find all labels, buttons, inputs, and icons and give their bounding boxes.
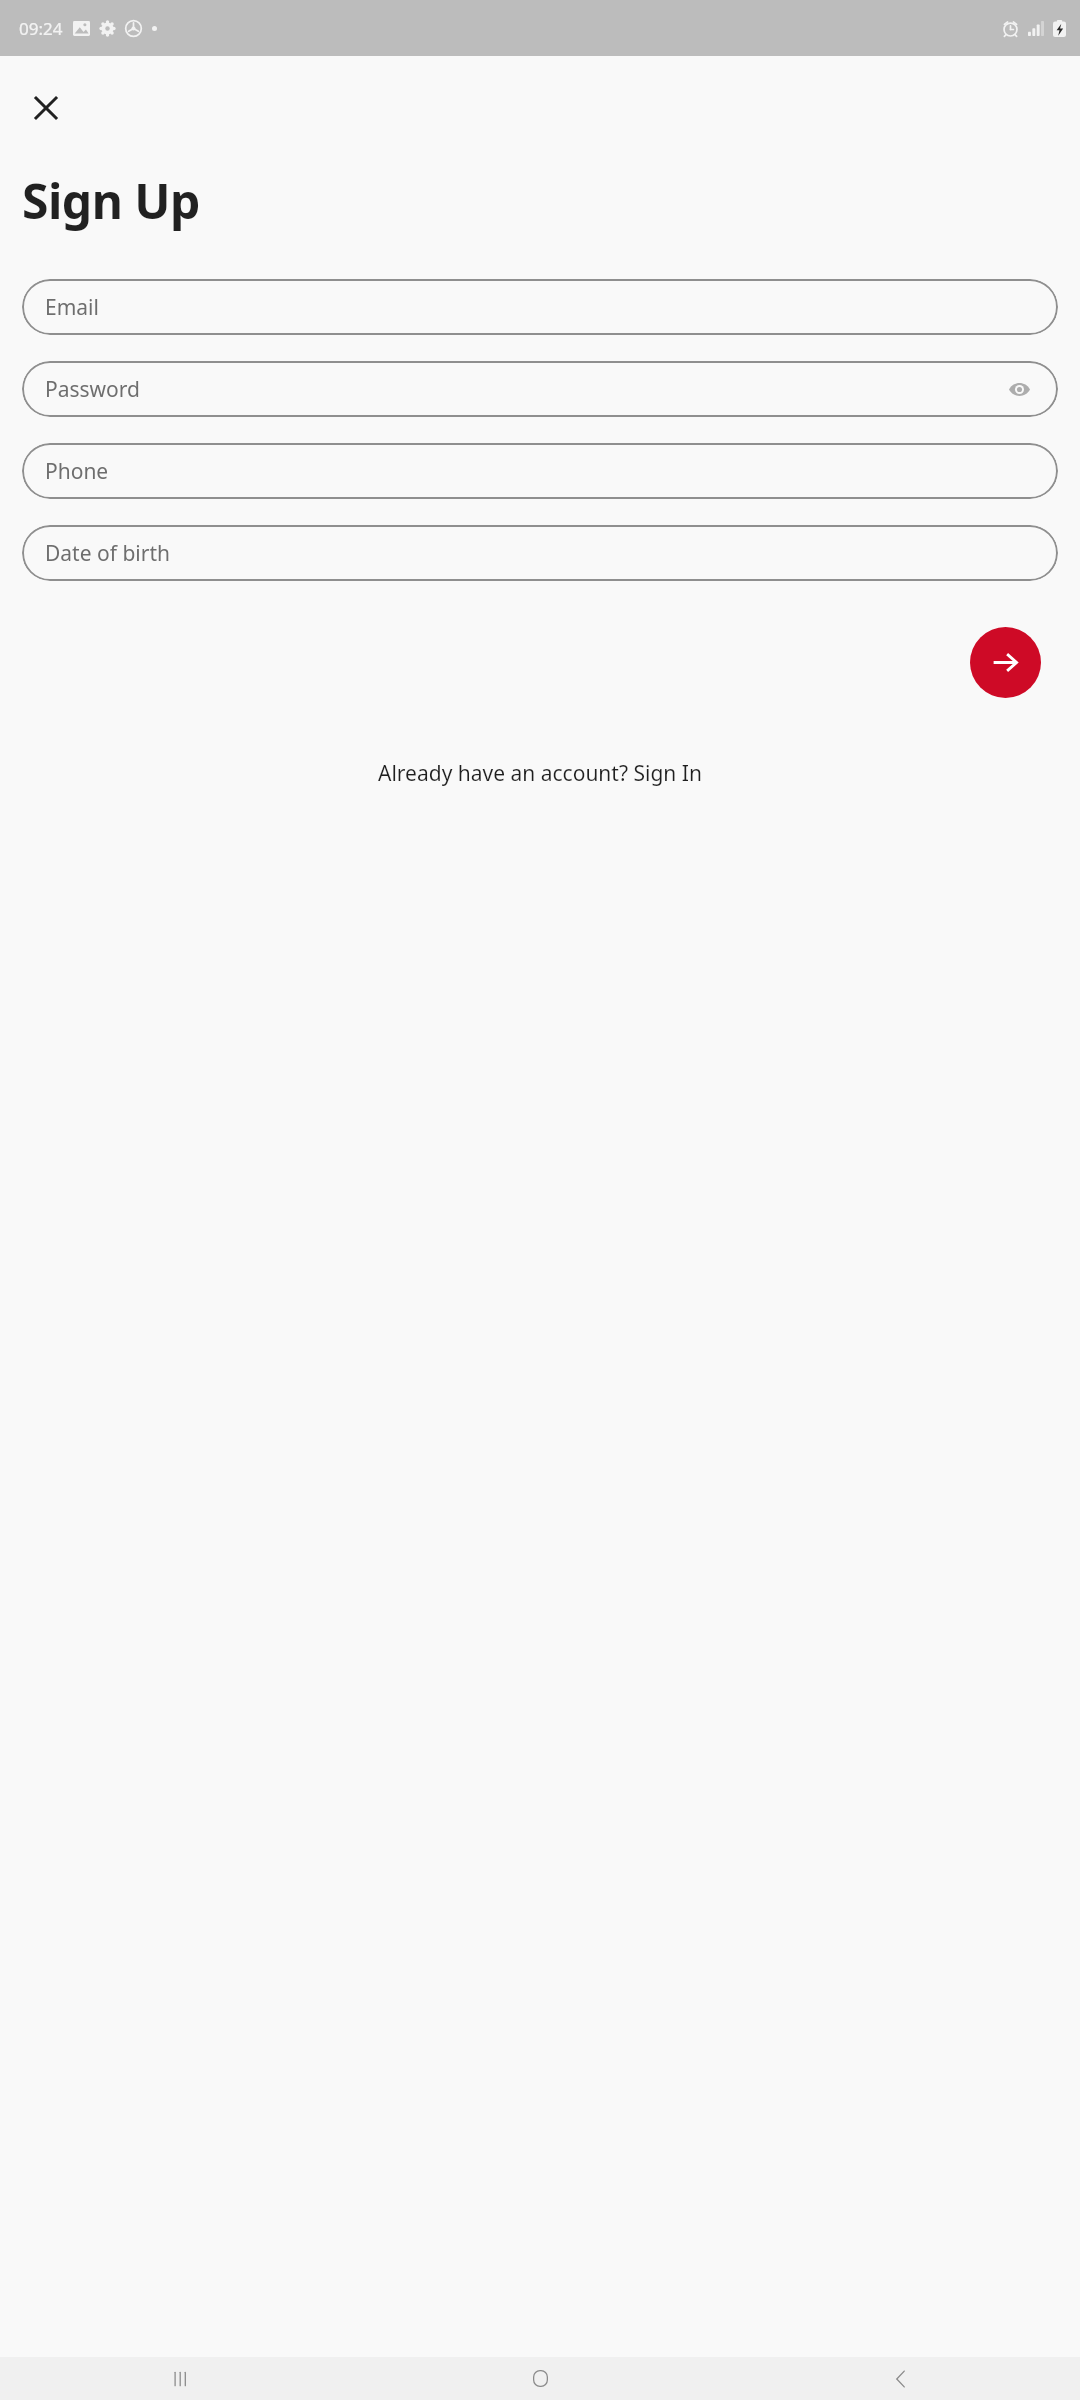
staticText: Sign Up bbox=[22, 168, 200, 233]
button[interactable]: Already have an account? Sign In bbox=[0, 751, 1080, 796]
button[interactable]: Close bbox=[23, 85, 68, 130]
staticText: Email bbox=[45, 293, 99, 322]
staticText: Already have an account? Sign In bbox=[378, 759, 702, 788]
button[interactable]: Continue bbox=[970, 627, 1041, 698]
staticText: Phone bbox=[45, 457, 109, 486]
staticText: Password bbox=[45, 375, 140, 404]
button[interactable]: Home bbox=[360, 2357, 720, 2400]
staticText: Date of birth bbox=[45, 539, 170, 568]
button[interactable]: Password bbox=[22, 361, 1058, 417]
button[interactable]: Recent apps bbox=[0, 2357, 360, 2400]
button[interactable]: Back bbox=[720, 2357, 1080, 2400]
button[interactable]: Show password bbox=[1002, 372, 1036, 406]
button[interactable]: Date of birth bbox=[22, 525, 1058, 581]
button[interactable]: Email bbox=[22, 279, 1058, 335]
button[interactable]: Phone bbox=[22, 443, 1058, 499]
staticText: 09:24 bbox=[19, 17, 63, 40]
